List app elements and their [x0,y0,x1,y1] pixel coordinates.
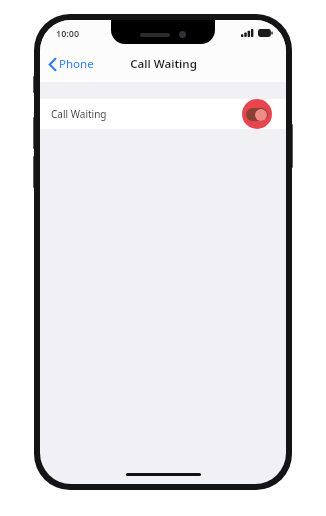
staticText: Phone [59,56,94,72]
button[interactable]: Call Waiting [40,99,286,129]
staticText: 10:00 [56,27,80,39]
button[interactable]: Call Waiting toggle [240,99,274,129]
staticText: Call Waiting [51,107,107,121]
staticText: Call Waiting [130,56,197,72]
button[interactable]: Phone [40,51,102,77]
